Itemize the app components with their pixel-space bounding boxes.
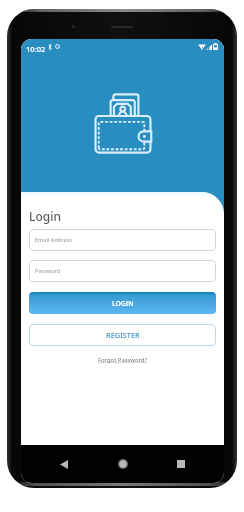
button[interactable]: Recent apps: [170, 453, 192, 475]
staticText: REGISTER: [106, 330, 140, 340]
button[interactable]: Home: [112, 453, 134, 475]
button[interactable]: Back: [53, 453, 75, 475]
button[interactable]: REGISTER: [29, 324, 216, 346]
staticText: LOGIN: [112, 299, 134, 308]
button[interactable]: Password: [29, 260, 216, 282]
staticText: 10:02: [26, 44, 46, 54]
staticText: Login: [29, 208, 61, 224]
button[interactable]: LOGIN: [29, 292, 216, 314]
staticText: Email Address: [35, 236, 72, 244]
button[interactable]: Forgot Password?: [98, 356, 148, 364]
staticText: Password: [35, 267, 61, 275]
button[interactable]: Email Address: [29, 229, 216, 251]
